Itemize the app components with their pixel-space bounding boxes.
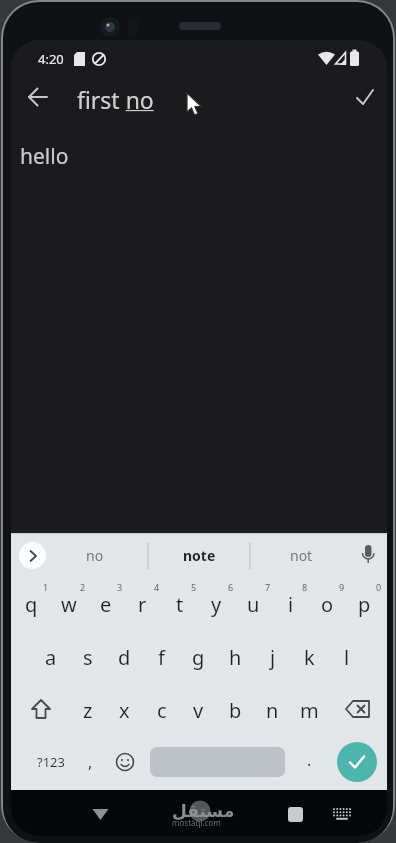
staticText: g	[192, 644, 205, 671]
staticText: مستقل	[172, 801, 235, 821]
button[interactable]	[337, 742, 377, 782]
staticText: 8	[302, 581, 308, 593]
button[interactable]: note	[159, 533, 239, 578]
staticText: hello	[20, 142, 69, 171]
button[interactable]: x	[106, 684, 143, 737]
button[interactable]: k	[291, 631, 328, 684]
button[interactable]: t	[161, 578, 198, 631]
button[interactable]	[22, 81, 54, 113]
staticText: v	[193, 697, 204, 724]
button[interactable]: e	[87, 578, 124, 631]
staticText: z	[83, 697, 93, 724]
button[interactable]: m	[291, 684, 328, 737]
button[interactable]: r	[124, 578, 161, 631]
staticText: s	[83, 644, 93, 671]
staticText: 4:20	[38, 50, 64, 68]
staticText: ,	[88, 751, 93, 773]
button[interactable]: f	[143, 631, 180, 684]
button[interactable]: v	[180, 684, 217, 737]
button[interactable]	[349, 81, 381, 113]
button[interactable]: h	[217, 631, 254, 684]
button[interactable]	[341, 692, 377, 728]
staticText: x	[119, 697, 130, 724]
staticText: 4	[154, 581, 160, 593]
staticText: a	[45, 644, 57, 671]
staticText: i	[288, 591, 294, 618]
button[interactable]: i	[272, 578, 309, 631]
staticText: .	[307, 749, 312, 771]
staticText: k	[304, 644, 315, 671]
button[interactable]	[84, 798, 116, 830]
staticText: b	[229, 697, 242, 724]
staticText: 0	[376, 581, 382, 593]
button[interactable]: l	[328, 631, 365, 684]
button[interactable]: no	[55, 533, 135, 578]
staticText: ?123	[37, 753, 65, 771]
button[interactable]: u	[235, 578, 272, 631]
staticText: 9	[339, 581, 345, 593]
button[interactable]: ?123	[23, 745, 79, 779]
button[interactable]: s	[69, 631, 106, 684]
button[interactable]: o	[309, 578, 346, 631]
button[interactable]: p	[346, 578, 383, 631]
button[interactable]	[326, 798, 358, 830]
button[interactable]	[279, 798, 311, 830]
staticText: d	[118, 644, 131, 671]
button[interactable]	[111, 748, 139, 776]
staticText: y	[211, 591, 222, 618]
button[interactable]: w	[50, 578, 87, 631]
button[interactable]: j	[254, 631, 291, 684]
staticText: p	[358, 591, 371, 618]
staticText: q	[25, 591, 38, 618]
staticText: 2	[80, 581, 86, 593]
button[interactable]	[150, 747, 285, 777]
staticText: l	[344, 644, 350, 671]
button[interactable]: y	[198, 578, 235, 631]
staticText: 1	[43, 581, 49, 593]
staticText: t	[176, 591, 184, 618]
staticText: j	[270, 644, 276, 671]
staticText: 7	[265, 581, 271, 593]
button[interactable]: first no	[77, 84, 154, 115]
staticText: c	[157, 697, 167, 724]
button[interactable]	[25, 692, 57, 728]
staticText: e	[100, 591, 112, 618]
staticText: o	[321, 591, 334, 618]
button[interactable]: a	[32, 631, 69, 684]
staticText: w	[61, 591, 77, 618]
button[interactable]: g	[180, 631, 217, 684]
staticText: 5	[191, 581, 197, 593]
staticText: m	[300, 697, 319, 724]
staticText: mostaql.com	[172, 817, 221, 828]
staticText: f	[158, 644, 165, 671]
button[interactable]: c	[143, 684, 180, 737]
button[interactable]	[19, 542, 46, 569]
staticText: not	[290, 546, 313, 565]
staticText: r	[138, 591, 147, 618]
staticText: h	[229, 644, 242, 671]
staticText: 3	[117, 581, 123, 593]
button[interactable]: n	[254, 684, 291, 737]
staticText: 6	[228, 581, 234, 593]
staticText: u	[247, 591, 260, 618]
button[interactable]: z	[69, 684, 106, 737]
staticText: no	[86, 546, 104, 565]
staticText: n	[266, 697, 279, 724]
button[interactable]: d	[106, 631, 143, 684]
staticText: note	[183, 546, 216, 565]
button[interactable]: not	[261, 533, 341, 578]
button[interactable]: q	[13, 578, 50, 631]
button[interactable]: b	[217, 684, 254, 737]
